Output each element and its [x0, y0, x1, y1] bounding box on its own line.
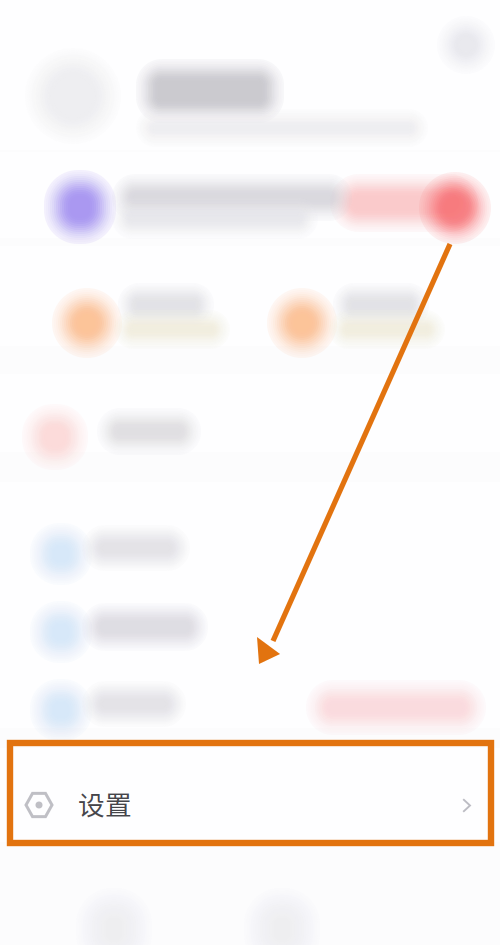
button[interactable] [0, 0, 500, 86]
button[interactable] [0, 0, 500, 78]
button[interactable]: Tab 1 [0, 0, 130, 86]
button[interactable] [0, 0, 500, 78]
button[interactable] [0, 0, 500, 78]
button[interactable]: Tab 2 [0, 0, 130, 86]
button[interactable] [0, 0, 246, 100]
button[interactable] [0, 0, 500, 78]
button[interactable]: 设置 [0, 0, 500, 94]
staticText: 设置 [78, 784, 132, 823]
button[interactable] [0, 0, 246, 100]
button[interactable] [0, 0, 420, 150]
